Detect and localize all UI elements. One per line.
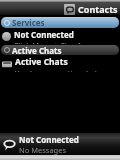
button[interactable]: Contacts: [64, 3, 118, 15]
button[interactable]: Active Chats: [0, 56, 120, 72]
staticText: Contacts: [78, 3, 118, 15]
staticText: No Messages: [19, 145, 67, 155]
staticText: Not Connected: [19, 134, 79, 145]
button[interactable]: Not Connected: [0, 133, 120, 155]
staticText: Not Connected: [14, 29, 74, 40]
staticText: Active Chats: [12, 45, 62, 55]
button[interactable]: Active Chats: [1, 45, 119, 55]
staticText: Click Menu > Sign In: [14, 40, 86, 44]
button[interactable]: Services: [1, 17, 119, 28]
button[interactable]: Not Connected: [0, 29, 120, 44]
staticText: Services: [12, 17, 45, 28]
staticText: You have no active chats: [15, 68, 102, 72]
staticText: Active Chats: [15, 56, 68, 68]
